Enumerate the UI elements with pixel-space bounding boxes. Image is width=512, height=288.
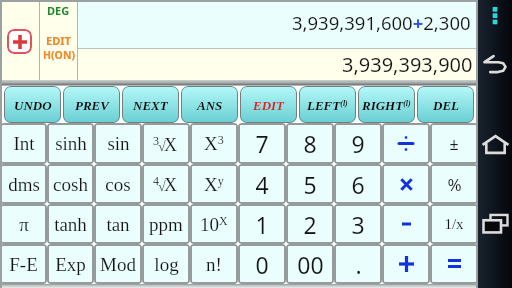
staticText: X xyxy=(164,175,177,195)
button[interactable]: Back xyxy=(480,50,510,78)
button[interactable]: 00 xyxy=(286,244,334,284)
button[interactable]: NEXT xyxy=(122,86,179,123)
button[interactable]: X3 xyxy=(190,123,238,164)
staticText: DEG xyxy=(47,3,70,18)
staticText: ppm xyxy=(149,214,183,235)
button[interactable]: sin xyxy=(94,123,142,164)
staticText: n! xyxy=(206,254,222,275)
button[interactable]: Xy xyxy=(190,164,238,204)
button[interactable]: LEFT(l) xyxy=(299,86,356,123)
staticText: Mod xyxy=(100,254,136,275)
button[interactable] xyxy=(382,164,430,204)
staticText: 5 xyxy=(303,169,317,200)
button[interactable]: Exp xyxy=(47,244,94,284)
staticText: sin xyxy=(107,133,130,154)
button[interactable]: 3,939,393,900 xyxy=(78,49,473,79)
staticText: 10X xyxy=(200,214,228,235)
button[interactable]: Int xyxy=(0,123,47,164)
staticText: . xyxy=(355,249,362,280)
button[interactable]: 5 xyxy=(286,164,334,204)
button[interactable]: n! xyxy=(190,244,238,284)
staticText: % xyxy=(447,173,462,196)
button[interactable]: cos xyxy=(94,164,142,204)
button[interactable]: tan xyxy=(94,204,142,244)
button[interactable]: % xyxy=(430,164,478,204)
staticText: 0 xyxy=(255,249,269,280)
staticText: tanh xyxy=(54,214,87,235)
button[interactable]: . xyxy=(334,244,382,284)
button[interactable]: 4 xyxy=(142,164,190,204)
staticText: 9 xyxy=(351,128,365,159)
button[interactable]: F-E xyxy=(0,244,47,284)
button[interactable]: ± xyxy=(430,123,478,164)
button[interactable]: 10X xyxy=(190,204,238,244)
staticText: H(ON) xyxy=(43,48,75,62)
staticText: ANS xyxy=(197,98,223,112)
button[interactable]: 3 xyxy=(142,123,190,164)
staticText: √ xyxy=(158,179,166,195)
staticText: √ xyxy=(158,139,166,155)
button[interactable]: DEG xyxy=(40,2,77,80)
staticText: 3,939,391,600+2,300 xyxy=(292,10,471,35)
button[interactable] xyxy=(382,244,430,284)
button[interactable]: 6 xyxy=(334,164,382,204)
staticText: 8 xyxy=(303,128,317,159)
button[interactable]: 2 xyxy=(286,204,334,244)
staticText: 3 xyxy=(153,134,159,147)
staticText: 6 xyxy=(351,169,365,200)
staticText: X xyxy=(164,135,177,155)
button[interactable]: 8 xyxy=(286,123,334,164)
button[interactable]: 3,939,391,600+2,300 xyxy=(78,2,471,43)
staticText: 7 xyxy=(255,128,269,159)
button[interactable]: Mod xyxy=(94,244,142,284)
button[interactable]: Add memory xyxy=(7,29,32,54)
button[interactable]: cosh xyxy=(47,164,94,204)
staticText: tan xyxy=(106,214,130,235)
staticText: 4 xyxy=(153,174,159,187)
button[interactable]: 1 xyxy=(238,204,286,244)
button[interactable]: log xyxy=(142,244,190,284)
button[interactable]: 4 xyxy=(238,164,286,204)
button[interactable] xyxy=(430,244,478,284)
button[interactable]: More options xyxy=(486,6,504,24)
button[interactable]: Recent apps xyxy=(480,209,510,237)
staticText: Int xyxy=(13,133,35,154)
button[interactable]: tanh xyxy=(47,204,94,244)
button[interactable]: ANS xyxy=(181,86,238,123)
button[interactable]: PREV xyxy=(63,86,120,123)
staticText: PREV xyxy=(75,98,109,112)
button[interactable] xyxy=(382,204,430,244)
button[interactable] xyxy=(382,123,430,164)
button[interactable]: ppm xyxy=(142,204,190,244)
staticText: π xyxy=(19,214,29,235)
button[interactable]: EDIT xyxy=(240,86,297,123)
button[interactable]: 1/x xyxy=(430,204,478,244)
button[interactable]: 3 xyxy=(334,204,382,244)
staticText: 1/x xyxy=(444,216,464,233)
staticText: 3 xyxy=(351,209,365,240)
button[interactable]: RIGHT(l) xyxy=(358,86,415,123)
staticText: dms xyxy=(8,174,40,195)
staticText: NEXT xyxy=(133,98,168,112)
button[interactable]: dms xyxy=(0,164,47,204)
staticText: 00 xyxy=(297,249,324,280)
staticText: UNDO xyxy=(14,98,52,112)
staticText: log xyxy=(154,254,179,275)
button[interactable]: 9 xyxy=(334,123,382,164)
button[interactable]: 0 xyxy=(238,244,286,284)
button[interactable]: UNDO xyxy=(4,86,61,123)
button[interactable]: Home xyxy=(480,130,510,158)
staticText: cosh xyxy=(53,174,88,195)
staticText: EDIT xyxy=(253,98,285,112)
button[interactable]: 7 xyxy=(238,123,286,164)
button[interactable]: sinh xyxy=(47,123,94,164)
staticText: sinh xyxy=(55,133,87,154)
staticText: cos xyxy=(105,174,131,195)
button[interactable]: π xyxy=(0,204,47,244)
button[interactable]: DEL xyxy=(417,86,474,123)
staticText: 4 xyxy=(255,169,269,200)
staticText: 1 xyxy=(255,209,269,240)
staticText: Xy xyxy=(204,174,224,195)
staticText: 2 xyxy=(303,209,317,240)
staticText: X3 xyxy=(204,133,224,154)
